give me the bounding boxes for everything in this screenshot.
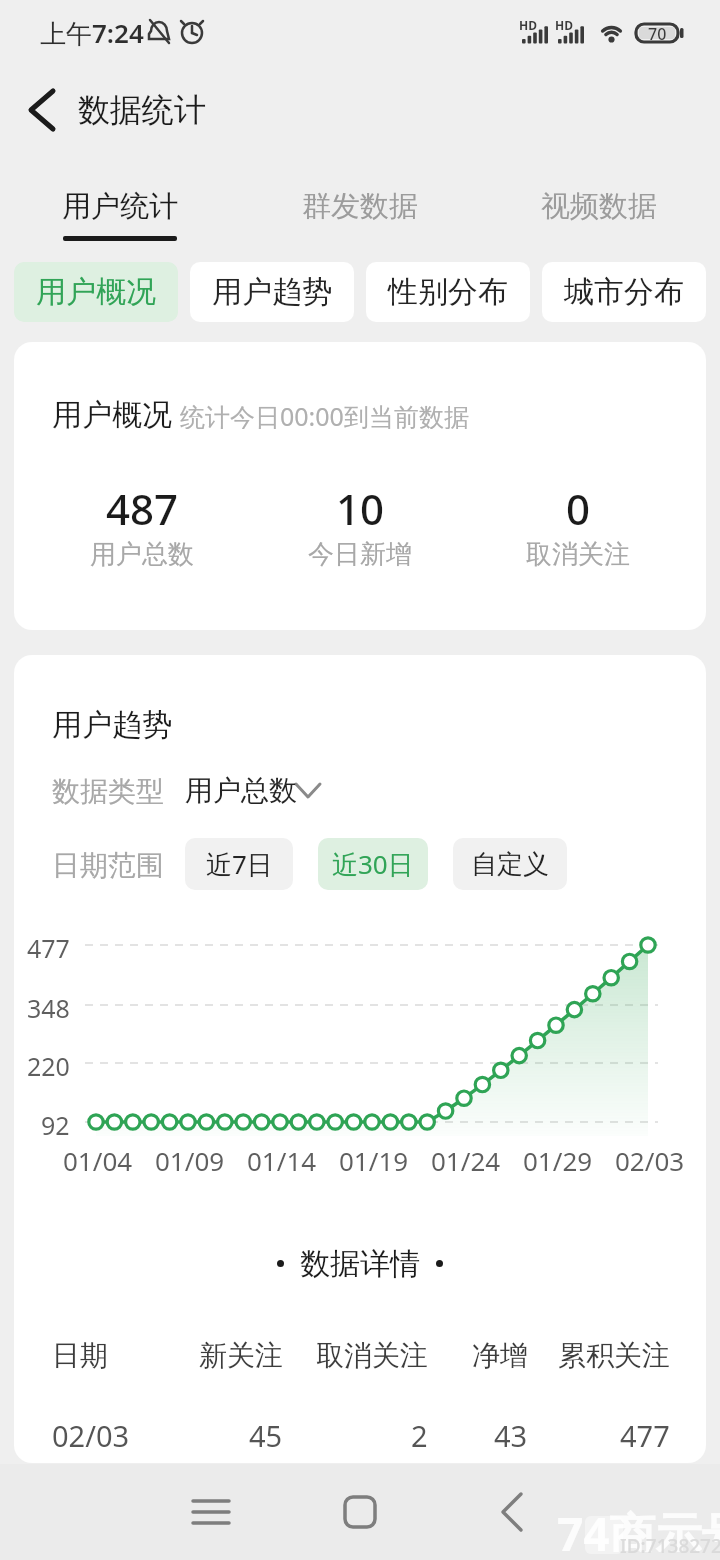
staticText: 数据统计 bbox=[78, 90, 206, 130]
staticText: 累积关注 bbox=[558, 1338, 670, 1372]
staticText: 用户统计 bbox=[62, 188, 178, 225]
staticText: 01/04 bbox=[63, 1143, 133, 1173]
staticText: 统计今日00:00到当前数据 bbox=[180, 399, 469, 429]
staticText: 上午7:24 bbox=[40, 15, 144, 51]
staticText: 取消关注 bbox=[316, 1338, 428, 1372]
staticText: 城市分布 bbox=[564, 273, 684, 311]
button[interactable]: 城市分布 bbox=[542, 262, 706, 322]
staticText: 自定义 bbox=[471, 848, 549, 881]
button[interactable]: 用户统计 bbox=[62, 180, 178, 232]
staticText: 2 bbox=[411, 1416, 428, 1450]
staticText: 取消关注 bbox=[526, 538, 630, 568]
staticText: 今日新增 bbox=[308, 538, 412, 568]
staticText: 43 bbox=[494, 1416, 528, 1450]
staticText: 用户总数 bbox=[90, 538, 194, 568]
button[interactable]: 用户总数 bbox=[185, 770, 335, 810]
staticText: 日期范围 bbox=[52, 848, 164, 880]
staticText: 92 bbox=[41, 1108, 70, 1136]
staticText: 用户概况 bbox=[36, 273, 156, 311]
staticText: 220 bbox=[27, 1049, 70, 1077]
staticText: 数据类型 bbox=[52, 774, 164, 806]
staticText: 477 bbox=[27, 931, 70, 959]
staticText: 02/03 bbox=[52, 1416, 130, 1450]
staticText: 近30日 bbox=[332, 846, 414, 882]
staticText: 01/19 bbox=[339, 1143, 409, 1173]
button[interactable]: 用户趋势 bbox=[190, 262, 354, 322]
staticText: 用户趋势 bbox=[212, 273, 332, 311]
staticText: 0 bbox=[566, 480, 591, 530]
staticText: ID:71382724 bbox=[620, 1533, 720, 1557]
staticText: 用户概况 bbox=[52, 396, 172, 430]
button[interactable] bbox=[324, 1476, 396, 1548]
staticText: 01/09 bbox=[155, 1143, 225, 1173]
button[interactable]: 近30日 bbox=[318, 838, 428, 890]
staticText: 近7日 bbox=[206, 846, 273, 882]
staticText: 477 bbox=[620, 1416, 670, 1450]
staticText: 视频数据 bbox=[541, 188, 657, 225]
button[interactable]: 视频数据 bbox=[541, 180, 657, 232]
staticText: 群发数据 bbox=[302, 188, 418, 225]
staticText: 用户趋势 bbox=[52, 706, 172, 740]
staticText: 用户总数 bbox=[185, 773, 297, 808]
staticText: 45 bbox=[249, 1416, 283, 1450]
button[interactable]: 近7日 bbox=[185, 838, 293, 890]
staticText: 02/03 bbox=[615, 1143, 685, 1173]
button[interactable] bbox=[476, 1476, 548, 1548]
button[interactable]: 性别分布 bbox=[366, 262, 530, 322]
staticText: 净增 bbox=[472, 1338, 528, 1372]
staticText: 数据详情 bbox=[300, 1245, 420, 1281]
staticText: 01/29 bbox=[523, 1143, 593, 1173]
staticText: 日期 bbox=[52, 1338, 108, 1372]
staticText: 01/14 bbox=[247, 1143, 317, 1173]
button[interactable] bbox=[175, 1476, 247, 1548]
button[interactable] bbox=[20, 86, 64, 134]
staticText: HD bbox=[519, 17, 537, 31]
staticText: 01/24 bbox=[431, 1143, 501, 1173]
staticText: 70 bbox=[648, 23, 667, 43]
staticText: HD bbox=[555, 17, 573, 31]
button[interactable]: 群发数据 bbox=[302, 180, 418, 232]
staticText: 487 bbox=[106, 480, 179, 530]
staticText: 348 bbox=[27, 991, 70, 1019]
staticText: 10 bbox=[336, 480, 385, 530]
staticText: 74商示号 bbox=[557, 1502, 720, 1552]
button[interactable]: 用户概况 bbox=[14, 262, 178, 322]
button[interactable]: 自定义 bbox=[453, 838, 567, 890]
staticText: 性别分布 bbox=[388, 273, 508, 311]
staticText: 新关注 bbox=[199, 1338, 283, 1372]
